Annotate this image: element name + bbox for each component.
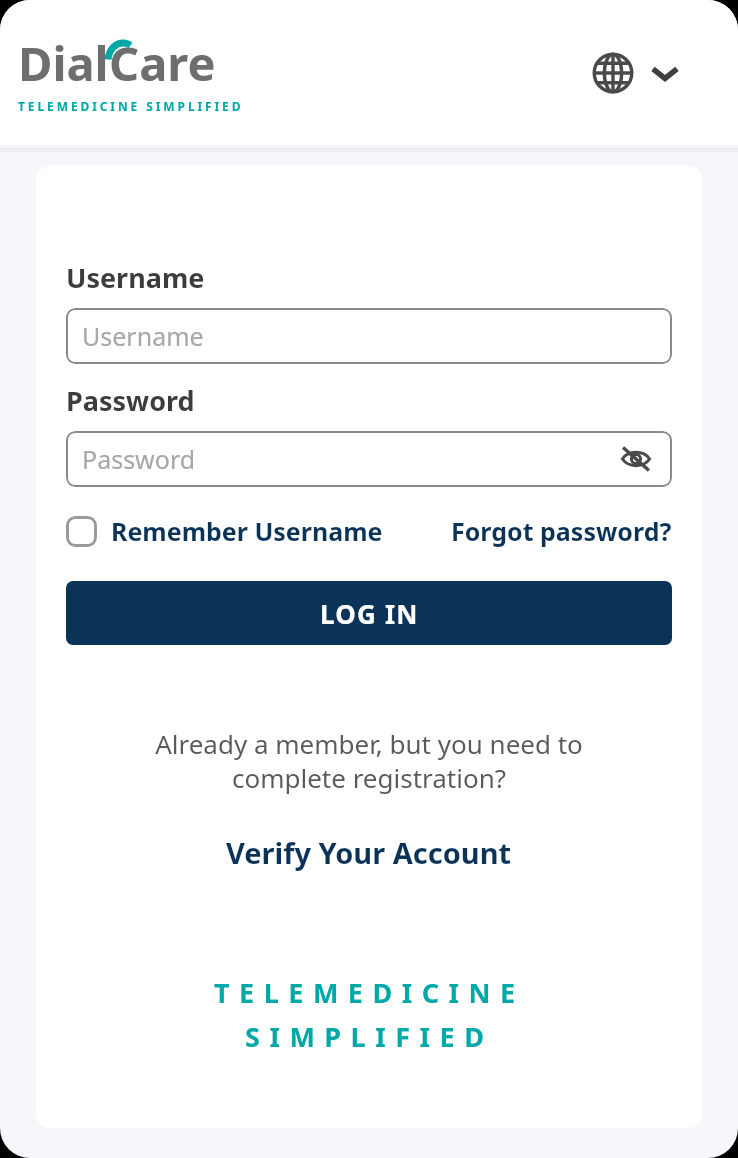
staticText: LOG IN (320, 596, 419, 631)
button[interactable]: LOG IN (66, 581, 672, 645)
staticText: Already a member, but you need to comple… (155, 726, 583, 796)
button[interactable]: Forgot password? (451, 514, 672, 548)
staticText: Verify Your Account (226, 833, 512, 872)
button[interactable]: Show password (616, 439, 656, 479)
staticText: Username (66, 259, 205, 296)
staticText: TELEMEDICINE (214, 974, 525, 1011)
staticText: TELEMEDICINE SIMPLIFIED (18, 98, 244, 114)
staticText: Username (82, 319, 204, 353)
staticText: Password (66, 382, 195, 419)
button[interactable]: Select language (586, 46, 686, 100)
button[interactable]: Password (66, 431, 672, 487)
staticText: Care (109, 31, 216, 95)
button[interactable]: Verify Your Account (226, 833, 512, 872)
staticText: Password (82, 442, 196, 476)
staticText: Remember Username (111, 514, 383, 548)
staticText: Dial (18, 31, 109, 95)
staticText: Forgot password? (451, 514, 672, 548)
button[interactable]: Username (66, 308, 672, 364)
button[interactable]: Remember Username (66, 514, 383, 548)
staticText: SIMPLIFIED (245, 1018, 494, 1055)
